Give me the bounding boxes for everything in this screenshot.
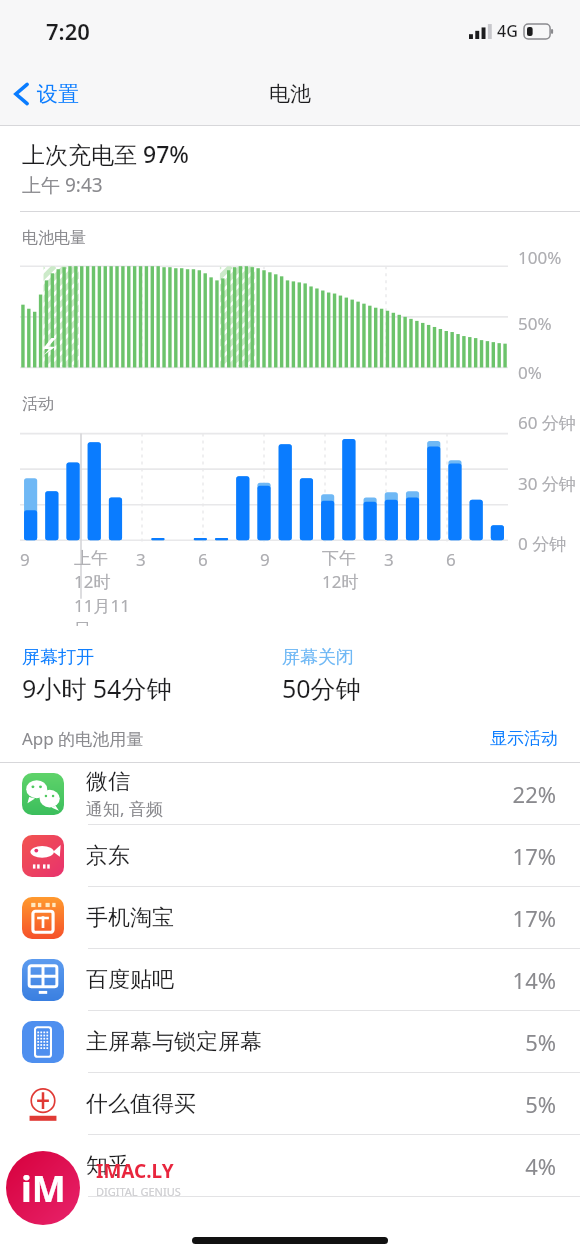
staticText: 通知, 音频 bbox=[86, 797, 163, 820]
staticText: 14% bbox=[512, 965, 556, 995]
staticText: 4% bbox=[525, 1151, 556, 1181]
staticText: 5% bbox=[525, 1089, 556, 1119]
button[interactable]: 京东 bbox=[0, 825, 580, 886]
button[interactable]: 微信 bbox=[0, 763, 580, 824]
staticText: 上午 9:43 bbox=[22, 172, 103, 198]
button[interactable]: 显示活动 bbox=[490, 728, 558, 749]
button[interactable]: 设置 bbox=[0, 75, 91, 113]
staticText: 0% bbox=[518, 361, 542, 384]
staticText: 4G bbox=[497, 20, 518, 42]
staticText: 3 bbox=[384, 548, 394, 571]
staticText: IMAC.LY bbox=[96, 1158, 174, 1184]
staticText: 手机淘宝 bbox=[86, 904, 174, 932]
button[interactable]: 知乎 bbox=[0, 1135, 580, 1196]
staticText: App 的电池用量 bbox=[22, 727, 144, 750]
staticText: 5% bbox=[525, 1027, 556, 1057]
staticText: 3 bbox=[136, 548, 146, 571]
staticText: 上午 12时 11月11日 bbox=[74, 548, 136, 626]
staticText: 100% bbox=[518, 246, 562, 269]
staticText: 上次充电至 97% bbox=[22, 138, 189, 169]
button[interactable]: 什么值得买 bbox=[0, 1073, 580, 1134]
staticText: 50分钟 bbox=[282, 671, 361, 705]
staticText: 百度贴吧 bbox=[86, 966, 174, 994]
staticText: 电池电量 bbox=[22, 228, 86, 248]
button[interactable]: 主屏幕与锁定屏幕 bbox=[0, 1011, 580, 1072]
staticText: 60 分钟 bbox=[518, 411, 576, 434]
staticText: 主屏幕与锁定屏幕 bbox=[86, 1028, 262, 1056]
staticText: 知乎 bbox=[86, 1152, 130, 1180]
staticText: 9 bbox=[20, 548, 30, 571]
staticText: 22% bbox=[512, 779, 556, 809]
staticText: 屏幕打开 bbox=[22, 646, 94, 669]
staticText: 0 分钟 bbox=[518, 532, 567, 555]
staticText: 6 bbox=[198, 548, 208, 571]
staticText: 6 bbox=[446, 548, 456, 571]
button[interactable]: 手机淘宝 bbox=[0, 887, 580, 948]
staticText: iM bbox=[21, 1164, 66, 1213]
staticText: 下午 12时 bbox=[322, 548, 359, 593]
staticText: 17% bbox=[512, 841, 556, 871]
staticText: 设置 bbox=[37, 81, 79, 107]
staticText: 17% bbox=[512, 903, 556, 933]
staticText: 30 分钟 bbox=[518, 472, 576, 495]
staticText: 微信 bbox=[86, 768, 130, 796]
staticText: 50% bbox=[518, 312, 552, 335]
staticText: 活动 bbox=[22, 394, 54, 414]
staticText: 什么值得买 bbox=[86, 1090, 196, 1118]
staticText: 显示活动 bbox=[490, 728, 558, 749]
staticText: 京东 bbox=[86, 842, 130, 870]
button[interactable]: 百度贴吧 bbox=[0, 949, 580, 1010]
staticText: 9 bbox=[260, 548, 270, 571]
staticText: 电池 bbox=[269, 81, 311, 107]
staticText: 7:20 bbox=[46, 16, 90, 46]
staticText: DIGITAL GENIUS bbox=[96, 1184, 181, 1199]
staticText: 9小时 54分钟 bbox=[22, 671, 172, 705]
staticText: 屏幕关闭 bbox=[282, 646, 354, 669]
